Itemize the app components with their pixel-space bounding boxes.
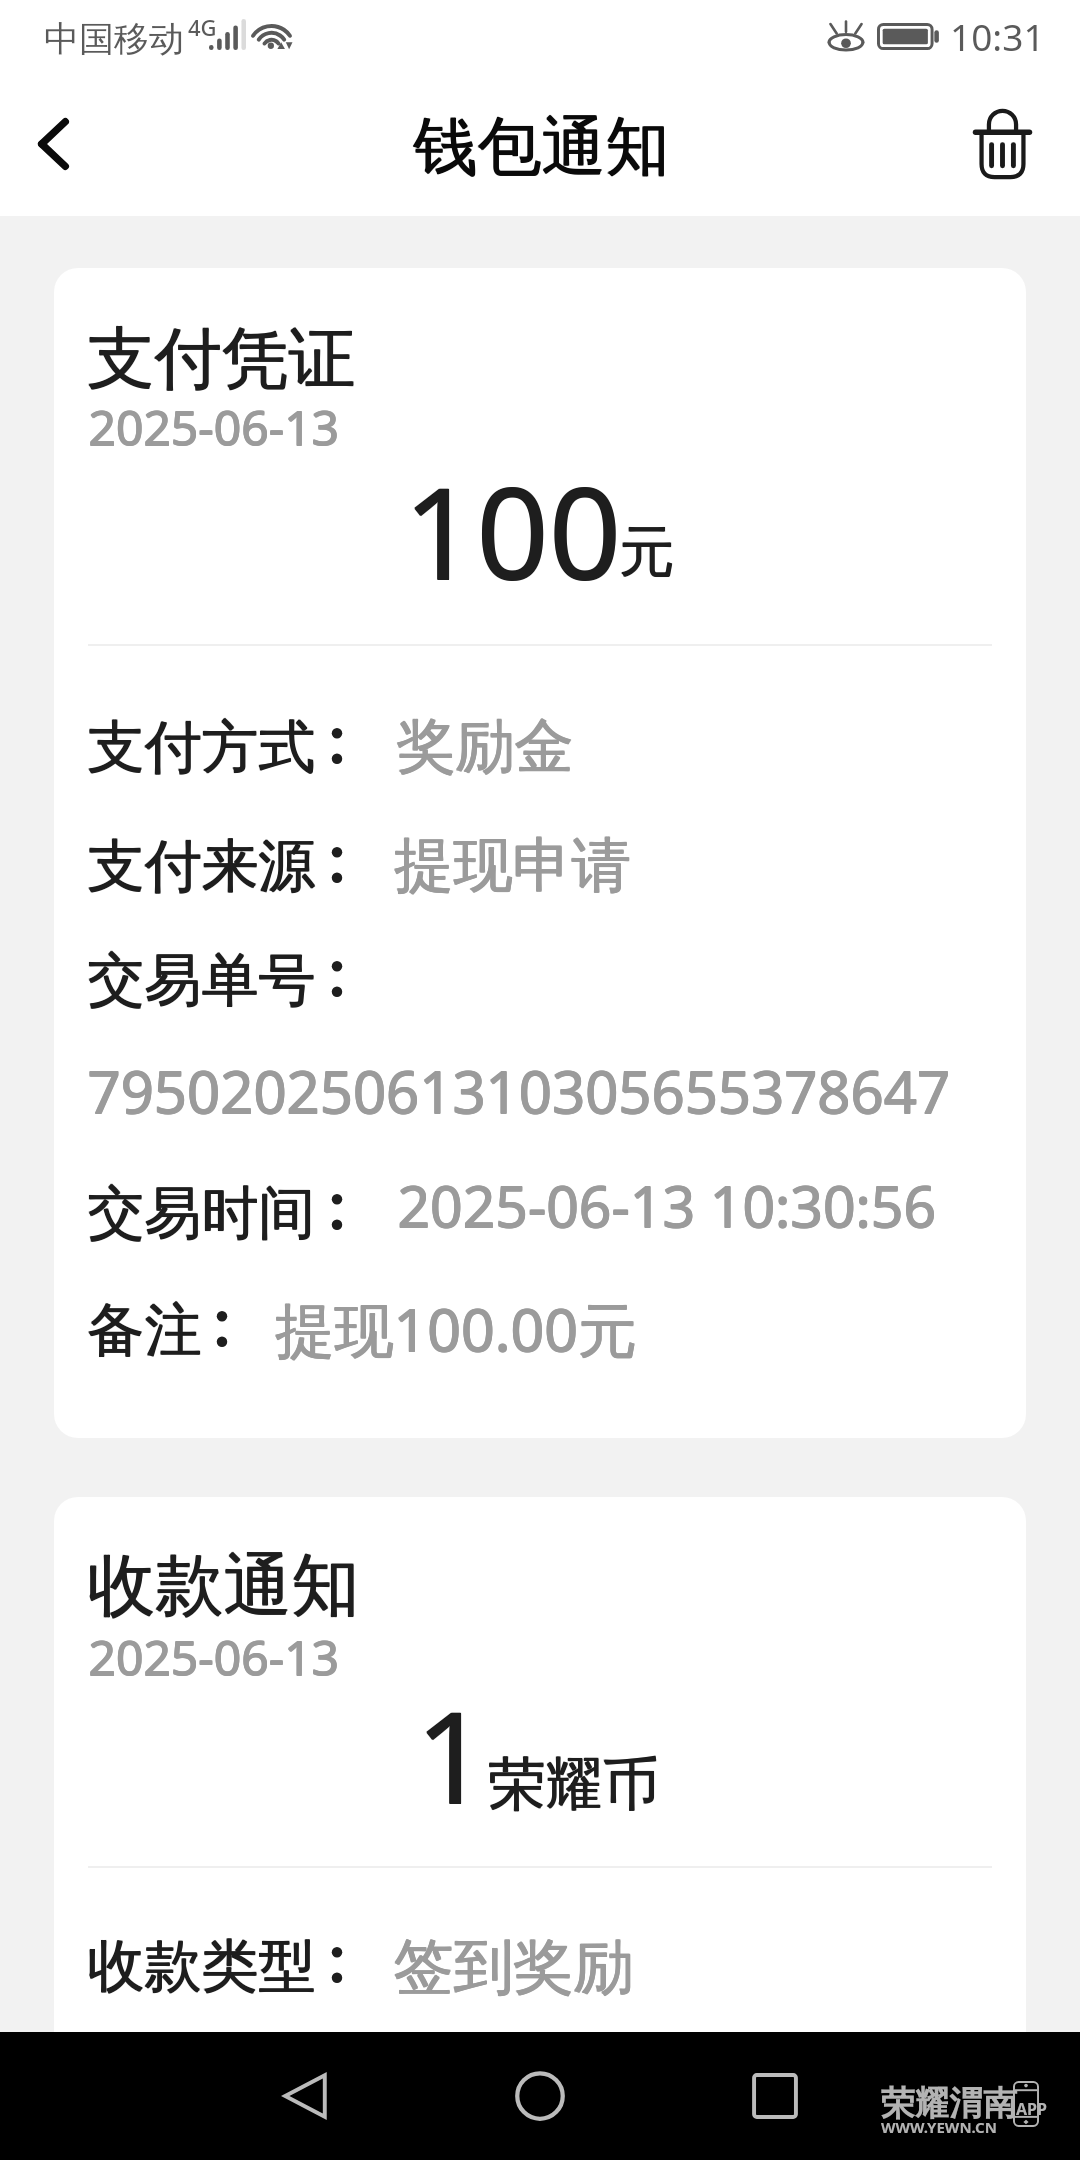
- staticText: 支付凭证: [87, 316, 355, 400]
- staticText: 2025-06-13: [89, 1624, 340, 1689]
- staticText: 支付来源: [88, 830, 316, 902]
- staticText: 79502025061310305655378647: [87, 1051, 950, 1130]
- staticText: 2025-06-13: [88, 1624, 339, 1689]
- staticText: 收款通知: [87, 1543, 359, 1629]
- staticText: 签到奖励: [394, 1929, 634, 2005]
- staticText: 100: [403, 443, 621, 616]
- staticText: 收款通知: [88, 1544, 360, 1630]
- staticText: 提现申请: [394, 829, 630, 903]
- staticText: 10:31: [950, 11, 1045, 61]
- staticText: 2025-06-13: [88, 395, 339, 460]
- staticText: 收款通知: [88, 1543, 360, 1629]
- staticText: 支付来源: [88, 831, 316, 903]
- button[interactable]: Delete: [950, 95, 1054, 199]
- staticText: 2025-06-13 10:30:56: [398, 1167, 937, 1245]
- staticText: 支付凭证: [88, 317, 356, 401]
- staticText: 支付来源: [87, 831, 315, 903]
- staticText: WWW.YEWN.CN: [881, 2117, 997, 2137]
- staticText: 交易时间: [88, 1177, 316, 1249]
- staticText: 提现100.00元: [276, 1289, 638, 1370]
- staticText: 奖励金: [397, 710, 574, 784]
- staticText: 提现申请: [394, 828, 630, 902]
- staticText: 奖励金: [396, 709, 573, 783]
- staticText: 荣耀渭南: [881, 2082, 1017, 2125]
- staticText: 2025-06-13: [89, 1625, 340, 1690]
- button[interactable]: 收款通知: [54, 1497, 1026, 2057]
- staticText: 荣耀币: [488, 1748, 659, 1820]
- staticText: 4G: [188, 12, 217, 42]
- staticText: 支付凭证: [88, 316, 356, 400]
- staticText: 支付方式: [88, 711, 316, 783]
- staticText: 1: [416, 1667, 489, 1840]
- staticText: 支付来源: [87, 830, 315, 902]
- staticText: 79502025061310305655378647: [88, 1052, 951, 1131]
- staticText: 备注: [88, 1294, 202, 1366]
- staticText: 荣耀币: [489, 1748, 660, 1820]
- staticText: 提现100.00元: [275, 1288, 637, 1369]
- staticText: 2025-06-13 10:30:56: [397, 1166, 936, 1244]
- staticText: 备注: [88, 1295, 202, 1367]
- staticText: 79502025061310305655378647: [88, 1051, 951, 1130]
- button[interactable]: Back: [0, 91, 106, 197]
- staticText: 元: [619, 518, 674, 587]
- staticText: 收款类型: [87, 1930, 315, 2002]
- staticText: 元: [620, 517, 675, 586]
- staticText: 钱包通知: [413, 107, 669, 188]
- staticText: 100: [404, 443, 622, 616]
- staticText: 提现申请: [395, 829, 631, 903]
- staticText: 1: [416, 1668, 489, 1841]
- staticText: 支付方式: [87, 712, 315, 784]
- staticText: 奖励金: [397, 709, 574, 783]
- staticText: 交易单号: [88, 944, 316, 1016]
- staticText: 收款通知: [87, 1544, 359, 1630]
- staticText: 交易单号: [88, 945, 316, 1017]
- staticText: 提现申请: [395, 828, 631, 902]
- staticText: 2025-06-13 10:30:56: [397, 1167, 936, 1245]
- staticText: 荣耀币: [489, 1749, 660, 1821]
- staticText: 签到奖励: [393, 1930, 633, 2006]
- button[interactable]: 支付凭证: [54, 268, 1026, 1438]
- staticText: 荣耀币: [488, 1749, 659, 1821]
- staticText: 签到奖励: [394, 1930, 634, 2006]
- staticText: 钱包通知: [414, 107, 670, 188]
- staticText: 79502025061310305655378647: [87, 1052, 950, 1131]
- staticText: 1: [415, 1668, 488, 1841]
- staticText: 备注: [87, 1294, 201, 1366]
- staticText: 钱包通知: [413, 106, 669, 187]
- staticText: 奖励金: [396, 710, 573, 784]
- staticText: 元: [619, 517, 674, 586]
- staticText: 备注: [87, 1295, 201, 1367]
- staticText: 100: [403, 444, 621, 617]
- staticText: 2025-06-13: [89, 395, 340, 460]
- staticText: 支付方式: [88, 712, 316, 784]
- staticText: 支付方式: [87, 711, 315, 783]
- staticText: 2025-06-13 10:30:56: [398, 1166, 937, 1244]
- staticText: 2025-06-13: [88, 1625, 339, 1690]
- staticText: 收款类型: [88, 1930, 316, 2002]
- staticText: 交易时间: [88, 1178, 316, 1250]
- staticText: 中国移动: [44, 17, 184, 61]
- staticText: 1: [415, 1667, 488, 1840]
- staticText: 交易时间: [87, 1177, 315, 1249]
- button[interactable]: Home: [480, 2036, 600, 2156]
- staticText: 交易单号: [87, 945, 315, 1017]
- staticText: 2025-06-13: [89, 394, 340, 459]
- staticText: 签到奖励: [393, 1929, 633, 2005]
- staticText: 2025-06-13: [88, 394, 339, 459]
- staticText: 交易时间: [87, 1178, 315, 1250]
- staticText: 钱包通知: [414, 106, 670, 187]
- staticText: 提现100.00元: [275, 1289, 637, 1370]
- staticText: 100: [404, 444, 622, 617]
- staticText: 收款类型: [87, 1931, 315, 2003]
- staticText: 提现100.00元: [276, 1288, 638, 1369]
- staticText: APP: [1016, 2098, 1047, 2120]
- staticText: 收款类型: [88, 1931, 316, 2003]
- staticText: 支付凭证: [87, 317, 355, 401]
- button[interactable]: Back: [245, 2036, 365, 2156]
- staticText: 交易单号: [87, 944, 315, 1016]
- button[interactable]: Recents: [715, 2036, 835, 2156]
- staticText: 元: [620, 518, 675, 587]
